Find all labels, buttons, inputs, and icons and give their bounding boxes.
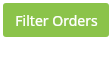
button[interactable]: Filter Orders (3, 3, 109, 37)
staticText: Filter Orders (15, 11, 98, 30)
